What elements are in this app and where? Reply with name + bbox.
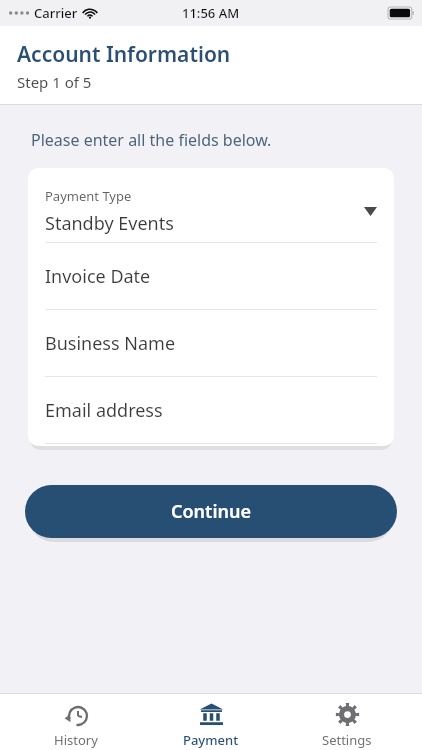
staticText: Payment Type xyxy=(45,187,132,205)
other: History xyxy=(64,702,89,727)
staticText: Settings xyxy=(322,731,372,749)
staticText: Account Information xyxy=(17,40,231,69)
other: Settings xyxy=(335,702,360,727)
other: Payment xyxy=(199,702,224,727)
button[interactable]: Invoice Date xyxy=(28,243,394,309)
staticText: 11:56 AM xyxy=(182,4,240,22)
button[interactable]: Settings xyxy=(287,696,407,749)
staticText: Business Name xyxy=(45,331,176,356)
button[interactable]: History xyxy=(16,696,136,749)
staticText: Carrier xyxy=(34,4,78,22)
staticText: Payment xyxy=(183,731,239,749)
button[interactable]: Payment Type xyxy=(28,180,394,242)
button[interactable]: Continue xyxy=(25,485,397,538)
staticText: Step 1 of 5 xyxy=(17,72,92,92)
staticText: Invoice Date xyxy=(45,264,151,289)
button[interactable]: Payment xyxy=(151,696,271,749)
staticText: Please enter all the fields below. xyxy=(31,129,272,151)
staticText: Continue xyxy=(171,499,251,524)
button[interactable]: Business Name xyxy=(28,310,394,376)
button[interactable]: Email address xyxy=(28,377,394,443)
staticText: Standby Events xyxy=(45,211,174,236)
other: Open payment type list xyxy=(364,207,377,216)
staticText: Email address xyxy=(45,398,163,423)
staticText: History xyxy=(54,731,98,749)
